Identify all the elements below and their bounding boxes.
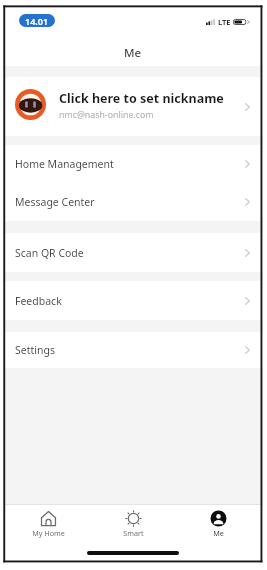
staticText: nmc@nash-online.com — [59, 109, 154, 121]
staticText: Scan QR Code — [15, 246, 84, 260]
staticText: Click here to set nickname — [59, 90, 224, 107]
staticText: LTE — [218, 17, 231, 27]
staticText: Message Center — [15, 195, 95, 209]
button[interactable]: Smart — [91, 505, 176, 547]
button[interactable]: Click here to set nickname — [5, 77, 261, 136]
staticText: Me — [124, 45, 142, 61]
staticText: Smart — [123, 528, 144, 538]
staticText: Home Management — [15, 157, 114, 171]
staticText: Settings — [15, 343, 55, 357]
staticText: Me — [213, 528, 224, 538]
staticText: Feedback — [15, 294, 62, 308]
staticText: 14.01 — [25, 15, 49, 27]
button[interactable]: Feedback — [5, 281, 261, 320]
button[interactable]: Home Management — [5, 145, 261, 183]
button[interactable]: Scan QR Code — [5, 233, 261, 272]
button[interactable]: Me — [176, 505, 261, 547]
button[interactable]: Settings — [5, 332, 261, 368]
button[interactable]: Message Center — [5, 183, 261, 221]
staticText: My Home — [32, 528, 65, 538]
button[interactable]: My Home — [5, 505, 91, 547]
